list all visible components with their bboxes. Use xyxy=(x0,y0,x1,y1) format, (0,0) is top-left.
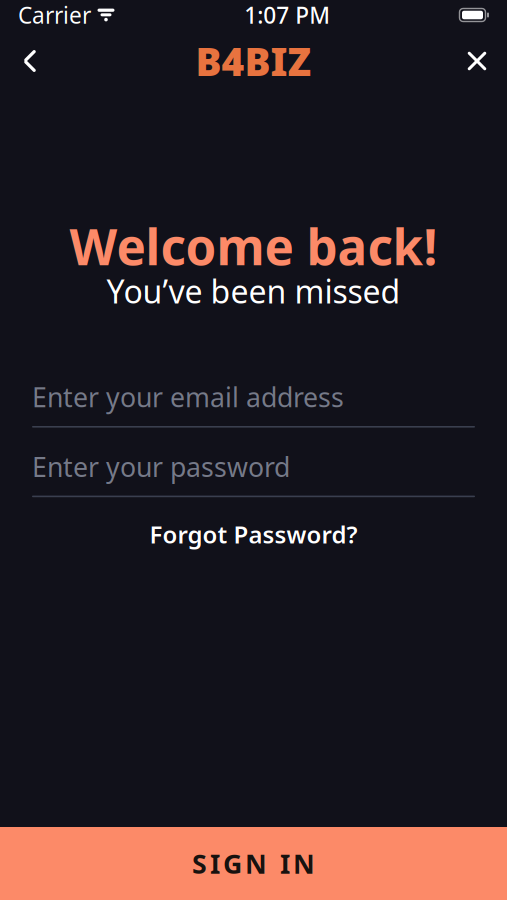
staticText: N xyxy=(293,846,315,881)
staticText: S xyxy=(192,846,207,881)
staticText: I xyxy=(280,846,290,881)
staticText: Welcome back! xyxy=(69,213,437,279)
staticText: Enter your email address xyxy=(32,379,344,415)
button[interactable]: Back xyxy=(2,33,58,89)
staticText: You’ve been missed xyxy=(106,270,400,312)
staticText: I xyxy=(210,846,220,881)
staticText: Carrier xyxy=(18,0,91,30)
button[interactable]: Enter your password xyxy=(32,450,475,497)
staticText: Forgot Password? xyxy=(149,518,357,550)
staticText: N xyxy=(245,846,267,881)
staticText: Enter your password xyxy=(32,449,290,484)
staticText: 1:07 PM xyxy=(244,0,330,30)
staticText: B4BIZ xyxy=(195,35,311,87)
button[interactable]: Close xyxy=(449,33,505,89)
button[interactable]: Forgot Password? xyxy=(32,515,475,553)
button[interactable]: S xyxy=(0,827,507,900)
staticText: G xyxy=(223,846,242,881)
button[interactable]: Enter your email address xyxy=(32,380,475,428)
